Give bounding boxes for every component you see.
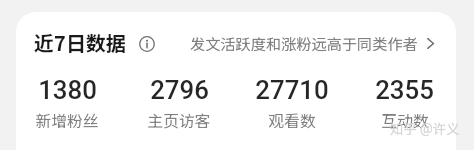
staticText: 知乎 @许义 bbox=[390, 118, 460, 138]
staticText: 27710 bbox=[255, 75, 329, 105]
button[interactable]: 发文活跃度和涨粉远高于同类作者 bbox=[190, 32, 434, 54]
staticText: 近7日数据 bbox=[34, 28, 126, 57]
staticText: 2355 bbox=[375, 75, 434, 105]
staticText: 1380 bbox=[38, 75, 97, 105]
button[interactable]: 1380 bbox=[16, 70, 123, 132]
staticText: 互动数 bbox=[381, 109, 429, 132]
button[interactable]: 27710 bbox=[235, 70, 348, 132]
staticText: 观看数 bbox=[268, 109, 316, 132]
button[interactable]: Info bbox=[139, 36, 155, 52]
staticText: 2796 bbox=[150, 75, 209, 105]
button[interactable]: 2355 bbox=[348, 70, 456, 132]
staticText: 发文活跃度和涨粉远高于同类作者 bbox=[190, 32, 418, 54]
staticText: 主页访客 bbox=[147, 109, 211, 132]
staticText: 新增粉丝 bbox=[35, 109, 99, 132]
button[interactable]: 2796 bbox=[123, 70, 235, 132]
